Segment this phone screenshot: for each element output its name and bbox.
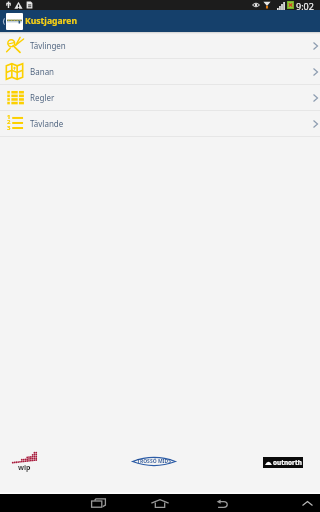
button[interactable]: Tävlingen <box>0 33 320 59</box>
staticText: 1 <box>7 113 11 121</box>
button[interactable]: Home <box>142 494 178 512</box>
staticText: TROSSÖ MIDS <box>137 458 171 465</box>
staticText: Tävlande <box>30 118 64 129</box>
button[interactable]: Expand status bar <box>294 494 320 512</box>
staticText: outnorth <box>273 458 302 467</box>
button[interactable]: Banan <box>0 59 320 85</box>
staticText: 3 <box>7 124 11 132</box>
button[interactable]: Recent apps <box>80 494 116 512</box>
staticText: Tävlingen <box>30 40 66 51</box>
button[interactable]: Back <box>0 10 6 32</box>
staticText: Regler <box>30 92 55 103</box>
staticText: 2 <box>7 118 11 126</box>
button[interactable]: 1 <box>0 111 320 137</box>
button[interactable]: Back <box>204 494 240 512</box>
staticText: wip <box>18 463 31 473</box>
staticText: Banan <box>30 66 55 77</box>
staticText: Kustjagaren <box>25 15 78 27</box>
staticText: 9:02 <box>296 0 314 10</box>
button[interactable]: Regler <box>0 85 320 111</box>
